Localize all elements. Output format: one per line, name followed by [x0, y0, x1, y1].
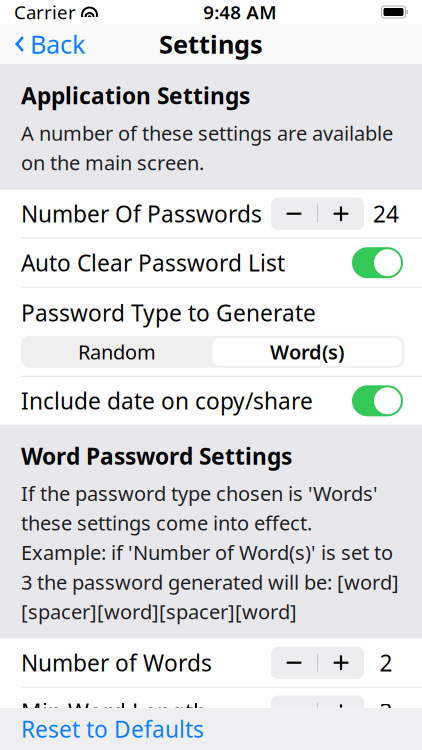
button[interactable]: Toggle — [352, 385, 403, 416]
staticText: Password Type to Generate — [21, 298, 316, 328]
button[interactable]: Back — [0, 24, 100, 64]
staticText: 9:48 AM — [203, 0, 276, 24]
staticText: Back — [30, 27, 86, 61]
staticText: Word Password Settings — [21, 441, 292, 471]
button[interactable]: Max Word Length — [0, 737, 422, 750]
staticText: A number of these settings are available… — [21, 120, 393, 176]
staticText: 24 — [373, 199, 399, 229]
staticText: Application Settings — [21, 80, 250, 111]
button[interactable]: Increment — [318, 198, 364, 230]
button[interactable]: Word(s) — [212, 338, 401, 366]
staticText: Number of Words — [21, 648, 212, 678]
button[interactable]: Reset to Defaults — [0, 708, 422, 750]
staticText: Random — [78, 338, 156, 365]
staticText: If the password type chosen is 'Words' t… — [21, 480, 399, 625]
staticText: Include date on copy/share — [21, 386, 313, 416]
button[interactable]: Increment — [318, 647, 364, 679]
button[interactable]: Toggle — [352, 247, 403, 278]
button[interactable]: Number of Words — [0, 639, 422, 687]
staticText: Number Of Passwords — [21, 199, 262, 229]
button[interactable]: Number Of Passwords — [0, 190, 422, 238]
button[interactable]: Increment — [318, 696, 364, 728]
button[interactable]: Decrement — [271, 198, 317, 230]
staticText: Min Word Length — [21, 697, 207, 727]
staticText: Settings — [159, 27, 263, 61]
button[interactable]: Min Word Length — [0, 688, 422, 736]
staticText: 3 — [379, 697, 392, 727]
staticText: Reset to Defaults — [21, 714, 204, 744]
staticText: Word(s) — [270, 338, 344, 365]
staticText: Carrier — [14, 0, 76, 24]
button[interactable]: Decrement — [271, 647, 317, 679]
staticText: 2 — [379, 648, 392, 678]
button[interactable]: Random — [21, 336, 212, 368]
staticText: Auto Clear Password List — [21, 248, 285, 278]
